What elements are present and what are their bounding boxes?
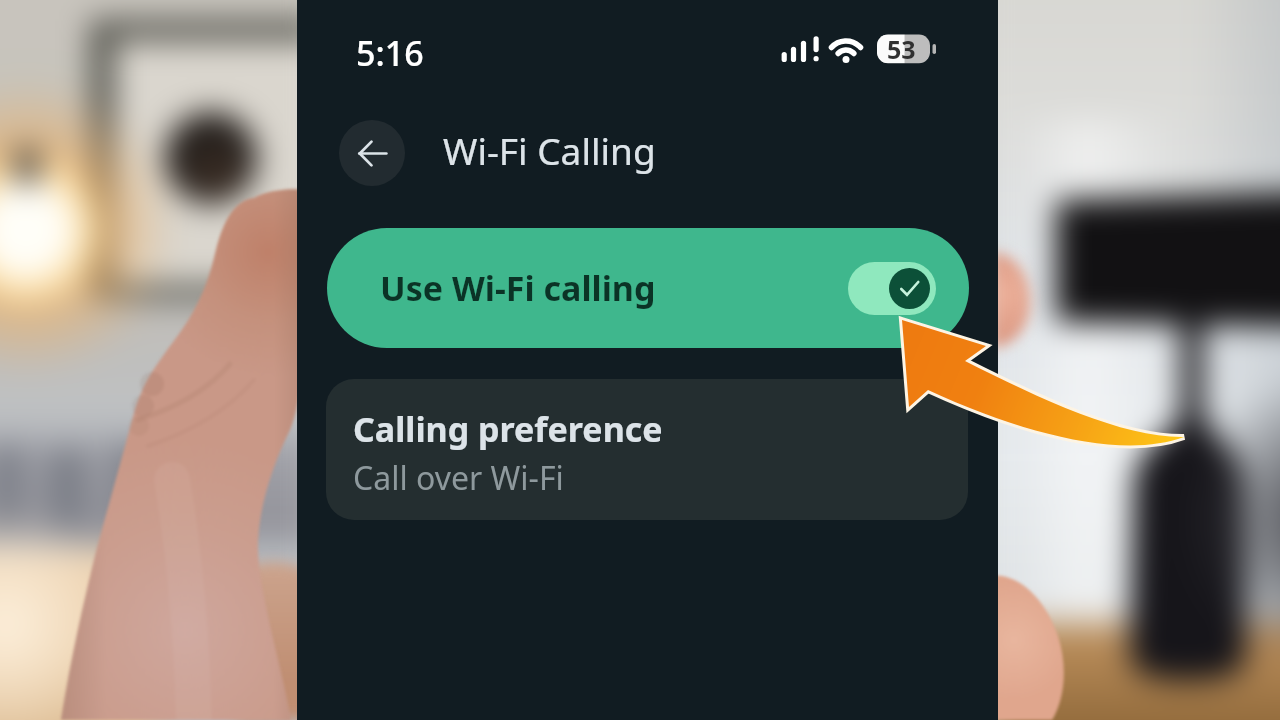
staticText: Use Wi-Fi calling xyxy=(380,265,656,311)
staticText: 5:16 xyxy=(356,30,424,76)
staticText: Call over Wi-Fi xyxy=(353,456,564,500)
staticText: Wi-Fi Calling xyxy=(443,125,656,175)
button[interactable]: Use Wi-Fi calling xyxy=(327,228,969,348)
staticText: 53 xyxy=(887,32,916,66)
staticText: Calling preference xyxy=(353,406,663,452)
button[interactable]: Calling preference xyxy=(326,379,968,520)
button[interactable]: Back xyxy=(339,120,405,186)
